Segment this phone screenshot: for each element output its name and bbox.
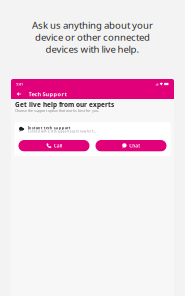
button[interactable]: Call	[18, 140, 89, 151]
staticText: Tech Support	[28, 90, 66, 98]
staticText: Instant tech support	[28, 125, 71, 130]
staticText: Connect with a tech support agent now fo…	[28, 129, 97, 133]
button[interactable]: Chat	[95, 140, 166, 151]
staticText: Call	[54, 142, 62, 149]
staticText: 9:41	[16, 81, 23, 87]
staticText: devices with live help.	[45, 42, 139, 56]
staticText: Chat	[129, 142, 140, 149]
staticText: Choose the support option that works bes…	[15, 108, 99, 113]
staticText: Ask us anything about your	[32, 18, 153, 32]
button[interactable]: Back	[11, 89, 28, 99]
button[interactable]: Instant tech support	[14, 122, 170, 136]
staticText: device or other connected	[35, 30, 150, 44]
staticText: Get live help from our experts	[15, 100, 114, 109]
